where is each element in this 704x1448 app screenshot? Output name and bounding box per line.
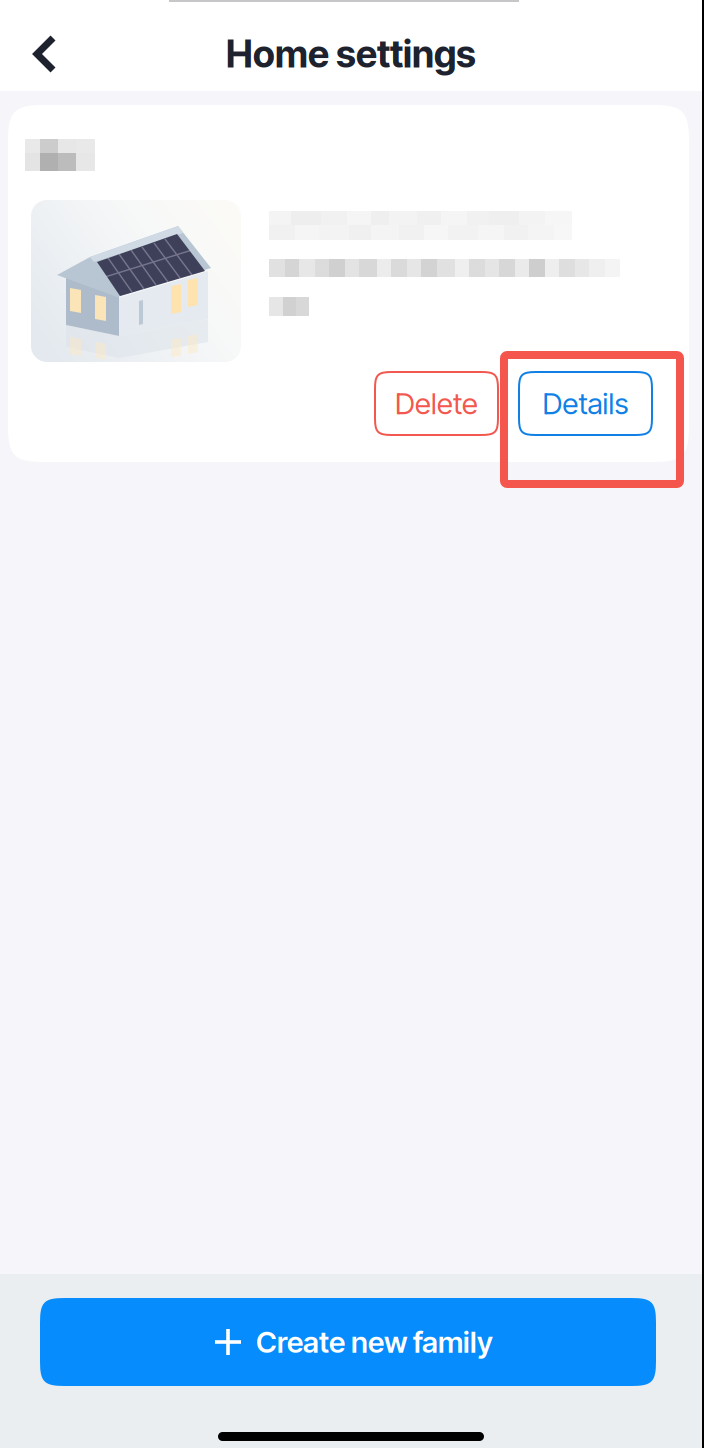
- staticText: Delete: [395, 386, 478, 421]
- staticText: Details: [542, 386, 628, 421]
- button[interactable]: Details: [519, 372, 652, 435]
- staticText: Home settings: [226, 31, 476, 77]
- button[interactable]: Back: [11, 20, 79, 88]
- button[interactable]: Create new family: [40, 1298, 656, 1386]
- button[interactable]: Delete: [375, 372, 498, 435]
- staticText: Create new family: [256, 1324, 493, 1360]
